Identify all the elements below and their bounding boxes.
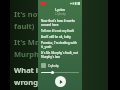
button[interactable]: Promise, I'm dealing with it, yeah [41,41,79,49]
button[interactable]: It's Mr. Murphy's fault, not Murphy's la… [41,51,79,59]
staticText: Crybaby [55,12,66,16]
staticText: fault) [14,21,35,31]
button[interactable]: And I will be ok, baby [41,35,79,39]
staticText: Tell me it's not my fault [41,29,74,33]
staticText: It's Mr. [14,37,40,47]
staticText: And I will be ok, baby [41,35,71,39]
button[interactable]: Tell me it's not my fault [41,29,79,33]
button[interactable]: Now that's how it works around here [41,19,79,27]
staticText: Promise, I'm dealing with it, yeah [41,41,79,49]
staticText: It's not my [14,9,55,19]
staticText: wrong [14,77,38,87]
staticText: Now that's how it works around here [41,19,79,27]
staticText: It's Mr. Murphy's fault, not Murphy's la… [41,51,79,59]
staticText: Lyrics [55,7,66,12]
button[interactable]: Play [55,76,66,87]
staticText: Murphy's [14,49,50,59]
button[interactable]: Crybaby [41,63,79,68]
staticText: What is [14,65,42,75]
button[interactable] [41,70,79,74]
staticText: Crybaby [48,64,59,68]
